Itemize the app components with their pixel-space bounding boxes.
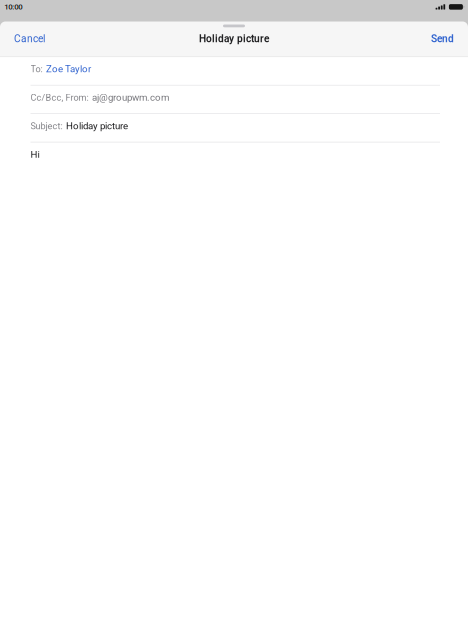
staticText: Send bbox=[431, 33, 454, 45]
staticText: Holiday picture bbox=[199, 33, 269, 45]
staticText: Cancel bbox=[14, 33, 45, 45]
staticText: Subject: bbox=[30, 121, 62, 131]
button[interactable]: Subject: bbox=[0, 114, 468, 142]
button[interactable]: Cc/Bcc, From: bbox=[0, 85, 468, 114]
staticText: Zoe Taylor bbox=[46, 63, 91, 75]
staticText: Hi bbox=[30, 149, 39, 160]
button[interactable]: Send bbox=[428, 27, 457, 56]
staticText: Cc/Bcc, From: bbox=[30, 92, 88, 103]
staticText: aj@groupwm.com bbox=[92, 92, 169, 103]
staticText: To: bbox=[30, 64, 42, 75]
staticText: 10:00 bbox=[4, 2, 22, 11]
staticText: Holiday picture bbox=[66, 120, 128, 132]
button[interactable]: To: bbox=[0, 57, 468, 85]
button[interactable]: Cancel bbox=[11, 27, 48, 56]
